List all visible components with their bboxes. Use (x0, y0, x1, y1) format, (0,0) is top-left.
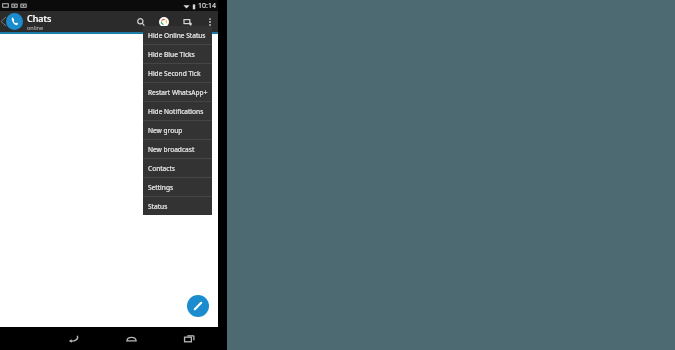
button[interactable]: Settings (143, 178, 212, 196)
button[interactable]: Restart WhatsApp+ (143, 83, 212, 101)
staticText: Hide Notifications (148, 107, 204, 116)
button[interactable]: Contacts (143, 159, 212, 177)
button[interactable]: Status (156, 14, 172, 30)
staticText: New group (148, 126, 183, 135)
button[interactable]: More options (202, 14, 218, 30)
button[interactable]: New group (143, 121, 212, 139)
staticText: online (27, 24, 44, 31)
button[interactable]: Hide Second Tick (143, 64, 212, 82)
button[interactable]: Search (133, 14, 149, 30)
button[interactable]: Profile (6, 13, 23, 30)
staticText: Contacts (148, 164, 176, 173)
button[interactable]: Hide Notifications (143, 102, 212, 120)
button[interactable]: Status (143, 197, 212, 215)
button[interactable]: New broadcast (143, 140, 212, 158)
button[interactable]: Home (116, 327, 146, 350)
button[interactable]: Back (58, 327, 88, 350)
staticText: Settings (148, 183, 174, 192)
staticText: Restart WhatsApp+ (148, 88, 208, 97)
staticText: 10:14 (198, 1, 216, 11)
staticText: Hide Second Tick (148, 69, 201, 78)
staticText: Hide Online Status (148, 31, 206, 40)
button[interactable]: Hide Blue Ticks (143, 45, 212, 63)
staticText: Chats (27, 12, 52, 24)
button[interactable]: New chat (180, 14, 196, 30)
staticText: Status (148, 202, 168, 211)
staticText: Hide Blue Ticks (148, 50, 195, 59)
button[interactable]: New message (187, 295, 209, 317)
staticText: New broadcast (148, 145, 195, 154)
button[interactable]: Recent apps (174, 327, 204, 350)
button[interactable]: Hide Online Status (143, 26, 212, 44)
